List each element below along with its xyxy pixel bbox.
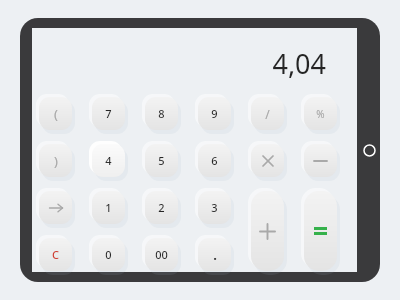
button[interactable]: 0 — [92, 238, 125, 271]
staticText: 4,04 — [272, 45, 326, 82]
staticText: ( — [54, 105, 58, 123]
staticText: 5 — [158, 153, 165, 168]
staticText: 6 — [211, 153, 218, 168]
button[interactable]: Open parenthesis — [39, 97, 72, 130]
staticText: ) — [54, 152, 58, 170]
button[interactable]: Backspace — [39, 191, 72, 224]
staticText: 9 — [211, 106, 218, 121]
button[interactable]: 5 — [145, 144, 178, 177]
staticText: C — [52, 247, 59, 262]
button[interactable]: 1 — [92, 191, 125, 224]
button[interactable]: Percent — [304, 97, 337, 130]
staticText: 0 — [105, 247, 112, 262]
button[interactable]: 00 — [145, 238, 178, 271]
button[interactable]: Home — [363, 144, 376, 157]
staticText: / — [265, 106, 270, 122]
staticText: 8 — [158, 106, 165, 121]
button[interactable]: 8 — [145, 97, 178, 130]
staticText: 4 — [105, 153, 112, 168]
button[interactable]: 6 — [198, 144, 231, 177]
button[interactable]: 4 — [92, 144, 125, 177]
button[interactable]: Decimal point — [198, 238, 231, 271]
button[interactable]: Minus — [304, 144, 337, 177]
button[interactable]: 7 — [92, 97, 125, 130]
button[interactable]: Plus — [251, 191, 284, 271]
staticText: 00 — [155, 247, 168, 262]
button[interactable]: 2 — [145, 191, 178, 224]
button[interactable]: Clear — [39, 238, 72, 271]
button[interactable]: 3 — [198, 191, 231, 224]
staticText: 1 — [105, 200, 112, 215]
staticText: 7 — [105, 106, 112, 121]
staticText: . — [213, 246, 217, 264]
button[interactable]: Multiply — [251, 144, 284, 177]
staticText: 3 — [211, 200, 218, 215]
button[interactable]: 9 — [198, 97, 231, 130]
button[interactable]: Close parenthesis — [39, 144, 72, 177]
button[interactable]: Equals — [304, 191, 337, 271]
button[interactable]: Divide — [251, 97, 284, 130]
staticText: % — [316, 107, 325, 121]
staticText: 2 — [158, 200, 165, 215]
